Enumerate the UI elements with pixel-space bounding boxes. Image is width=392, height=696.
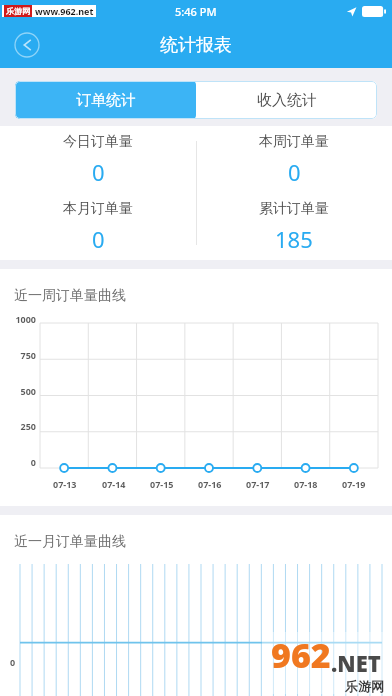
staticText: .NET xyxy=(331,648,381,678)
staticText: 0 xyxy=(10,656,16,668)
button[interactable]: 订单统计 xyxy=(15,81,196,119)
staticText: 收入统计 xyxy=(257,91,317,110)
staticText: 07-16 xyxy=(198,478,222,490)
button[interactable]: 本周订单量 xyxy=(196,126,392,193)
staticText: 962 xyxy=(271,632,331,678)
staticText: 5:46 PM xyxy=(175,4,217,19)
staticText: 近一月订单量曲线 xyxy=(14,533,126,551)
staticText: 0 xyxy=(30,456,36,468)
staticText: 185 xyxy=(275,224,313,254)
staticText: 1000 xyxy=(15,313,36,325)
staticText: 累计订单量 xyxy=(259,200,329,218)
button[interactable]: Back xyxy=(14,32,40,58)
staticText: 500 xyxy=(20,385,36,397)
staticText: 统计报表 xyxy=(160,34,232,57)
staticText: 07-18 xyxy=(294,478,318,490)
staticText: 07-19 xyxy=(342,478,366,490)
button[interactable]: 累计订单量 xyxy=(196,193,392,260)
staticText: 本周订单量 xyxy=(259,133,329,151)
staticText: 乐游网 xyxy=(345,678,384,694)
staticText: 近一周订单量曲线 xyxy=(14,287,126,305)
staticText: 订单统计 xyxy=(76,91,136,110)
button[interactable]: 本月订单量 xyxy=(0,193,196,260)
staticText: 250 xyxy=(20,420,36,432)
button[interactable]: 收入统计 xyxy=(196,81,377,119)
staticText: 07-14 xyxy=(102,478,126,490)
staticText: 0 xyxy=(92,157,105,187)
staticText: 07-17 xyxy=(246,478,270,490)
staticText: 今日订单量 xyxy=(63,133,133,151)
button[interactable]: 今日订单量 xyxy=(0,126,196,193)
staticText: 07-13 xyxy=(53,478,77,490)
staticText: 乐游网 xyxy=(6,6,30,16)
staticText: 0 xyxy=(92,224,105,254)
staticText: 07-15 xyxy=(150,478,174,490)
staticText: 0 xyxy=(288,157,301,187)
staticText: 本月订单量 xyxy=(63,200,133,218)
staticText: www.962.net xyxy=(35,5,94,17)
staticText: 750 xyxy=(20,349,36,361)
